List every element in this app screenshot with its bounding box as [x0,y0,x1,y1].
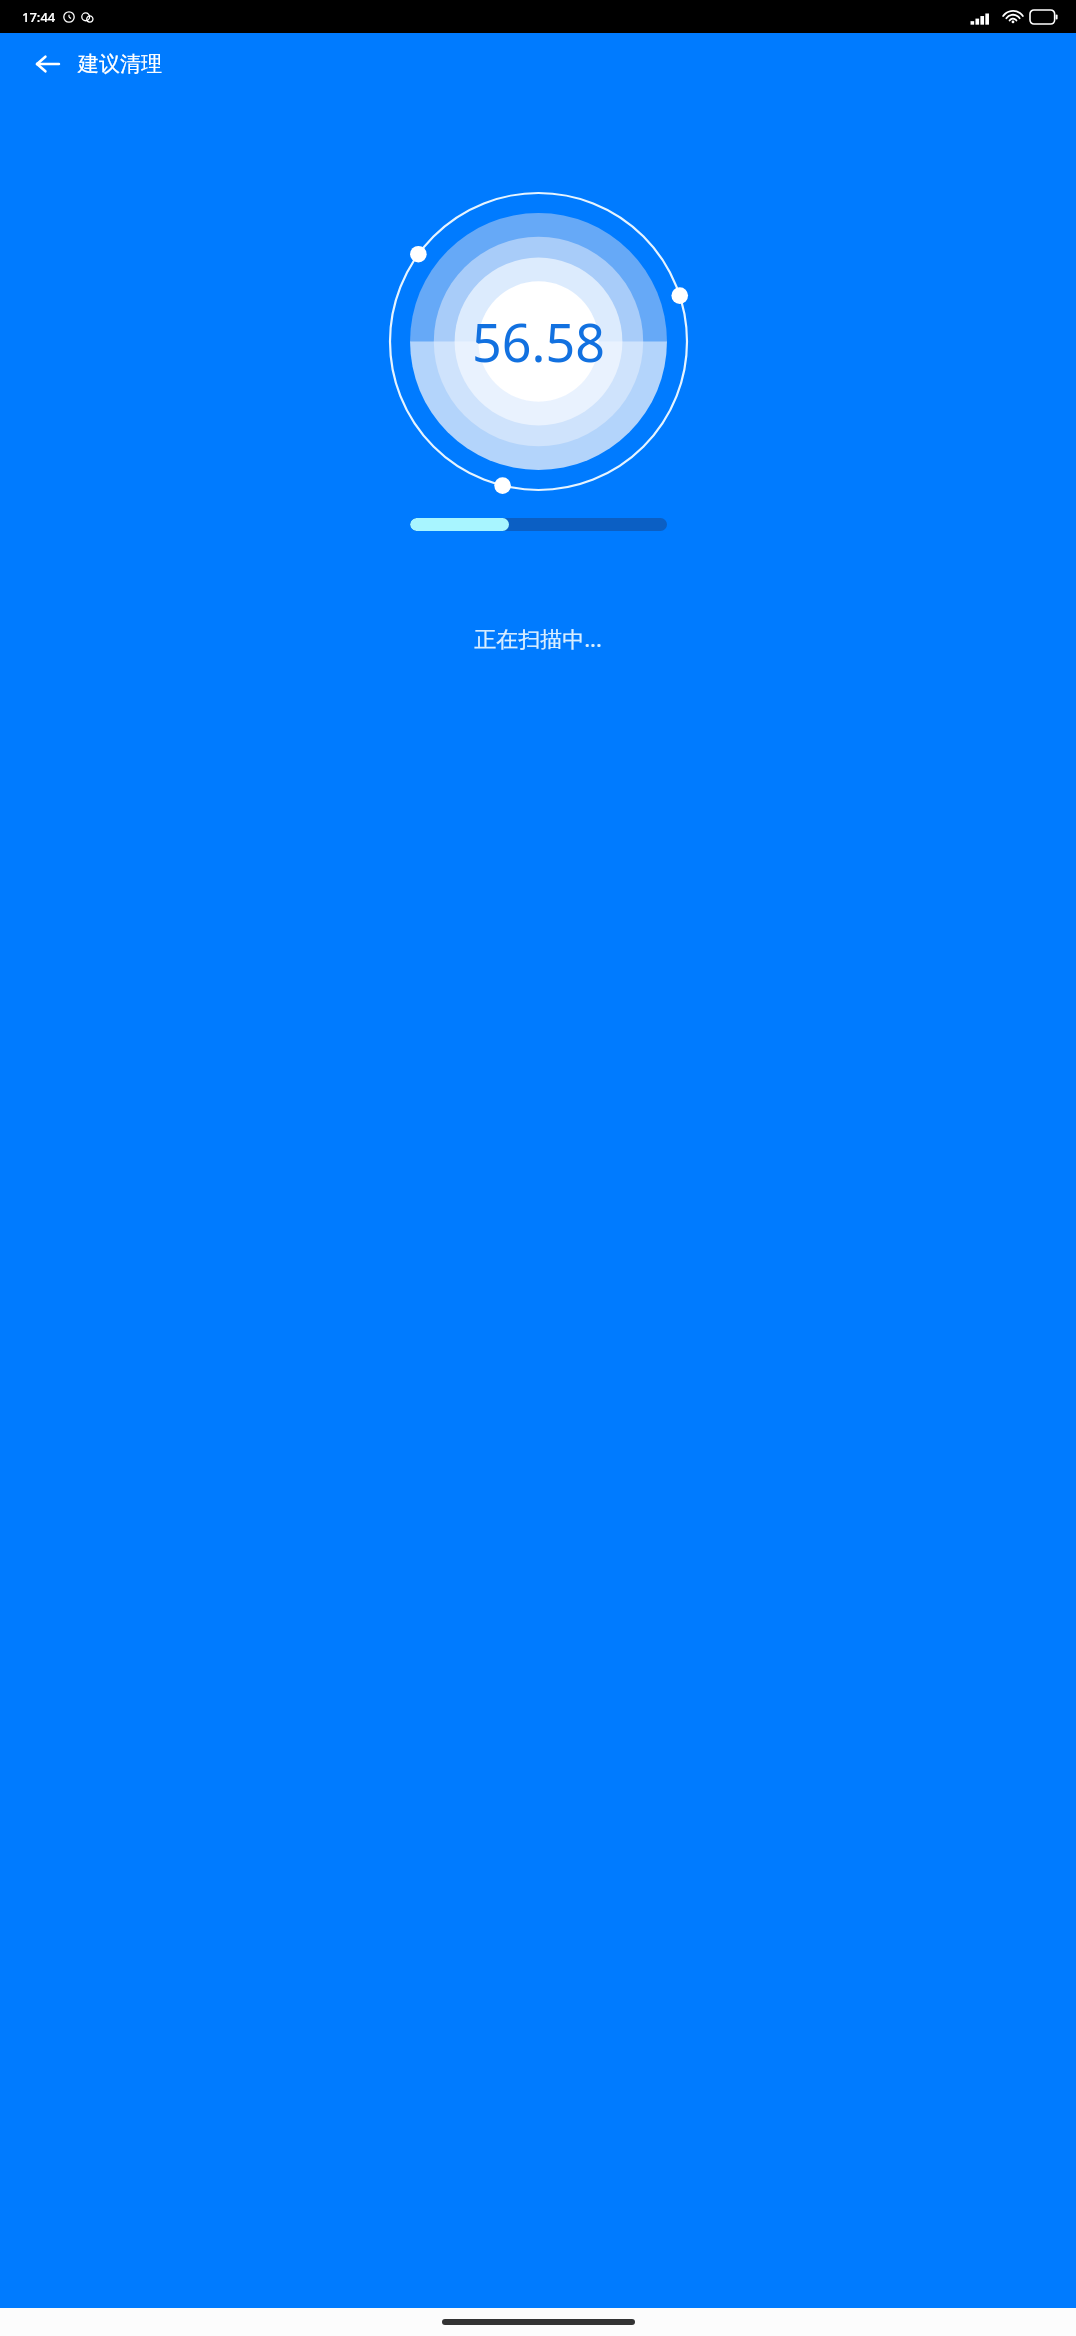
staticText: 正在扫描中... [474,623,602,653]
staticText: 建议清理 [78,51,162,77]
staticText: 56.58 [472,306,605,377]
button[interactable]: Back [26,42,70,86]
staticText: 17:44 [22,8,56,26]
